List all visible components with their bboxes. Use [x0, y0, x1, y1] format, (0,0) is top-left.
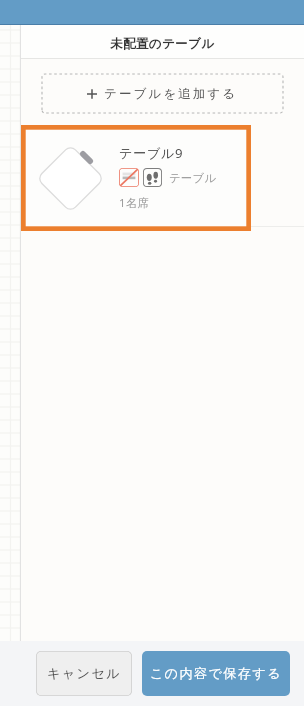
staticText: テーブル9 — [119, 144, 184, 162]
other: No reservation — [119, 168, 139, 187]
other: Walk in — [143, 168, 162, 187]
button[interactable]: テーブル9 — [21, 125, 251, 231]
staticText: キャンセル — [47, 665, 121, 682]
button[interactable]: キャンセル — [36, 651, 132, 696]
button[interactable]: この内容で保存する — [142, 651, 290, 696]
staticText: 未配置のテーブル — [110, 36, 215, 52]
button[interactable]: テーブルを追加する — [42, 74, 283, 113]
staticText: 1名席 — [119, 195, 149, 210]
staticText: テーブル — [169, 171, 217, 185]
staticText: テーブルを追加する — [104, 86, 238, 102]
staticText: この内容で保存する — [150, 665, 282, 682]
